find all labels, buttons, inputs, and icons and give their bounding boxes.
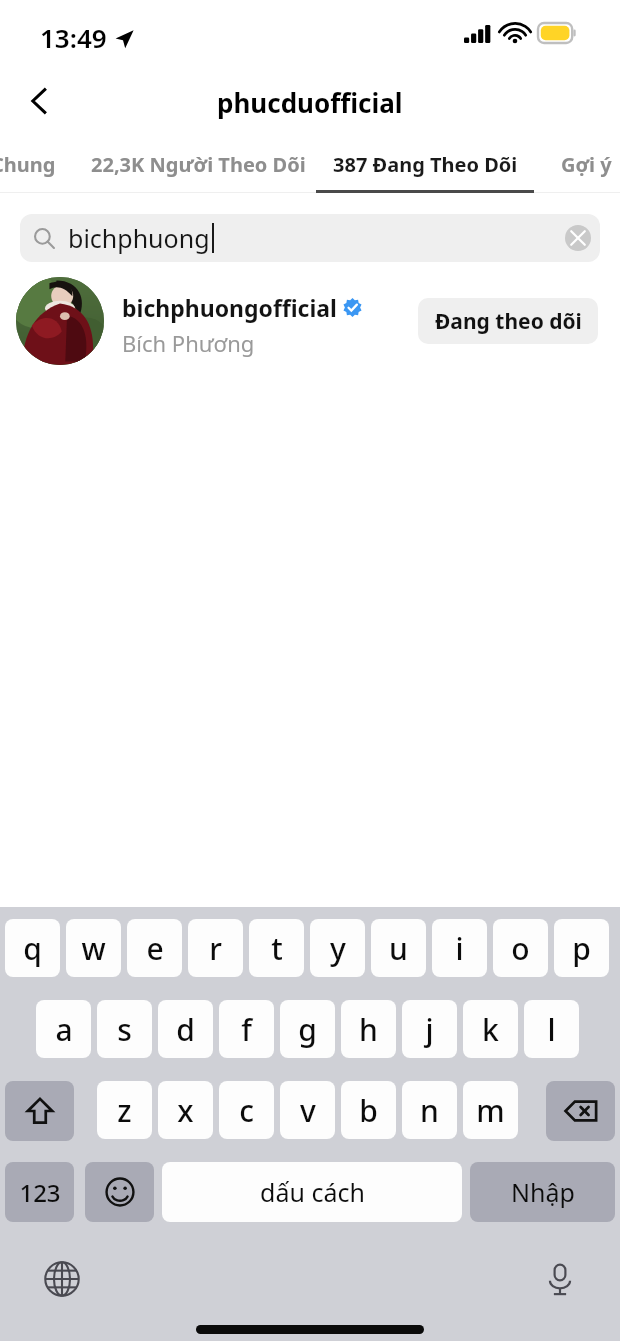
staticText: phucduofficial: [217, 85, 403, 120]
button[interactable]: o: [493, 919, 548, 977]
staticText: c: [239, 1090, 254, 1131]
staticText: m: [476, 1090, 505, 1131]
button[interactable]: Dictation: [536, 1255, 584, 1303]
button[interactable]: Chung: [0, 138, 78, 190]
button[interactable]: n: [402, 1081, 457, 1139]
button[interactable]: bichphuongofficial: [0, 272, 620, 370]
button[interactable]: Nhập: [470, 1162, 615, 1222]
button[interactable]: Clear text: [564, 224, 592, 252]
staticText: b: [359, 1090, 378, 1131]
staticText: a: [55, 1009, 73, 1050]
button[interactable]: h: [341, 1000, 396, 1058]
button[interactable]: w: [66, 919, 121, 977]
staticText: i: [455, 928, 464, 969]
staticText: e: [146, 928, 164, 969]
staticText: z: [117, 1090, 132, 1131]
staticText: f: [241, 1009, 252, 1050]
button[interactable]: dấu cách: [162, 1162, 462, 1222]
staticText: Bích Phương: [122, 328, 255, 358]
staticText: j: [425, 1009, 434, 1050]
button[interactable]: 22,3K Người Theo Dõi: [88, 138, 308, 190]
button[interactable]: Emoji: [85, 1162, 154, 1222]
button[interactable]: f: [219, 1000, 274, 1058]
button[interactable]: s: [97, 1000, 152, 1058]
button[interactable]: Change keyboard language: [38, 1255, 86, 1303]
button[interactable]: g: [280, 1000, 335, 1058]
button[interactable]: Đang theo dõi: [418, 298, 598, 344]
button[interactable]: l: [524, 1000, 579, 1058]
staticText: l: [547, 1009, 556, 1050]
staticText: dấu cách: [260, 1175, 365, 1209]
staticText: d: [176, 1009, 195, 1050]
button[interactable]: y: [310, 919, 365, 977]
button[interactable]: m: [463, 1081, 518, 1139]
staticText: o: [511, 928, 530, 969]
button[interactable]: e: [127, 919, 182, 977]
staticText: Đang theo dõi: [435, 307, 582, 336]
staticText: 387 Đang Theo Dõi: [333, 151, 518, 178]
staticText: s: [117, 1009, 132, 1050]
button[interactable]: k: [463, 1000, 518, 1058]
button[interactable]: u: [371, 919, 426, 977]
staticText: 13:49: [40, 20, 107, 55]
staticText: w: [81, 928, 106, 969]
staticText: Nhập: [511, 1175, 575, 1209]
staticText: v: [300, 1090, 316, 1131]
button[interactable]: d: [158, 1000, 213, 1058]
staticText: t: [271, 928, 283, 969]
staticText: 22,3K Người Theo Dõi: [91, 151, 306, 178]
staticText: bichphuongofficial: [122, 292, 337, 323]
button[interactable]: bichphuong: [20, 214, 600, 262]
staticText: k: [482, 1009, 499, 1050]
staticText: y: [330, 928, 346, 969]
button[interactable]: Backspace: [546, 1081, 615, 1141]
staticText: x: [177, 1090, 194, 1131]
staticText: q: [23, 928, 42, 969]
staticText: p: [572, 928, 591, 969]
staticText: Gợi ý: [561, 151, 612, 178]
button[interactable]: i: [432, 919, 487, 977]
button[interactable]: a: [36, 1000, 91, 1058]
button[interactable]: Numbers: [5, 1162, 74, 1222]
button[interactable]: b: [341, 1081, 396, 1139]
button[interactable]: 387 Đang Theo Dõi: [316, 138, 534, 190]
staticText: 123: [19, 1176, 61, 1209]
button[interactable]: v: [280, 1081, 335, 1139]
button[interactable]: Shift: [5, 1081, 74, 1141]
button[interactable]: r: [188, 919, 243, 977]
button[interactable]: Gợi ý: [540, 138, 620, 190]
staticText: r: [209, 928, 222, 969]
button[interactable]: j: [402, 1000, 457, 1058]
button[interactable]: x: [158, 1081, 213, 1139]
button[interactable]: q: [5, 919, 60, 977]
button[interactable]: c: [219, 1081, 274, 1139]
button[interactable]: t: [249, 919, 304, 977]
staticText: bichphuong: [68, 221, 210, 255]
button[interactable]: z: [97, 1081, 152, 1139]
button[interactable]: p: [554, 919, 609, 977]
staticText: Chung: [0, 151, 56, 178]
button[interactable]: Back: [14, 75, 66, 127]
staticText: h: [359, 1009, 378, 1050]
staticText: n: [420, 1090, 439, 1131]
staticText: u: [389, 928, 408, 969]
staticText: g: [298, 1009, 317, 1050]
